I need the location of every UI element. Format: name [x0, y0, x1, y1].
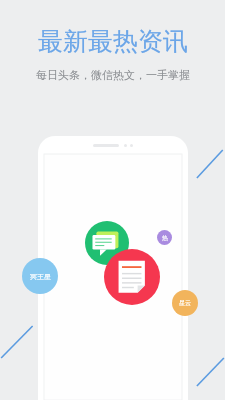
- button[interactable]: 热: [157, 230, 172, 245]
- staticText: 冥王星: [30, 272, 51, 281]
- staticText: 热: [162, 234, 168, 242]
- button[interactable]: [38, 136, 188, 400]
- staticText: 星云: [179, 299, 191, 307]
- staticText: 每日头条，微信热文，一手掌握: [36, 68, 190, 82]
- button[interactable]: 星云: [172, 290, 198, 316]
- button[interactable]: 冥王星: [22, 258, 58, 294]
- staticText: 最新最热资讯: [38, 26, 188, 57]
